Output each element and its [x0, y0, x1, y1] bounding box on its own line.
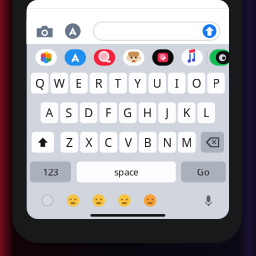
staticText: N — [163, 134, 172, 150]
button[interactable]: Memoji — [123, 49, 144, 66]
button[interactable]: Q — [31, 73, 48, 93]
button[interactable]: Shift — [32, 132, 54, 153]
button[interactable]: A — [41, 102, 58, 123]
button[interactable]: Recent emoji — [41, 194, 53, 207]
button[interactable]: Photos — [35, 49, 57, 66]
staticText: × — [211, 135, 217, 149]
staticText: E — [75, 75, 82, 91]
button[interactable]: Delete — [201, 132, 224, 153]
button[interactable]: Camera — [37, 25, 53, 37]
staticText: W — [54, 75, 65, 91]
staticText: O — [192, 75, 201, 91]
staticText: J — [165, 105, 168, 121]
button[interactable]: N — [158, 132, 176, 153]
staticText: B — [144, 134, 152, 150]
button[interactable]: E — [70, 73, 88, 93]
staticText: I — [175, 75, 179, 91]
button[interactable]: Emoji — [118, 194, 131, 207]
staticText: S — [66, 105, 73, 121]
button[interactable]: B — [139, 132, 156, 153]
button[interactable]: D — [80, 102, 97, 123]
button[interactable]: Send — [203, 24, 216, 38]
staticText: T — [115, 75, 122, 91]
staticText: D — [84, 105, 93, 121]
button[interactable]: 123 — [30, 161, 71, 182]
button[interactable]: S — [60, 102, 78, 123]
staticText: Go — [197, 166, 210, 178]
staticText: A — [45, 105, 53, 121]
button[interactable]: Emoji — [92, 194, 105, 207]
button[interactable]: Apps — [65, 23, 81, 39]
staticText: K — [183, 105, 190, 121]
staticText: V — [125, 134, 132, 150]
button[interactable]: W — [50, 73, 68, 93]
staticText: Y — [134, 75, 141, 91]
staticText: Q — [35, 75, 44, 91]
staticText: H — [143, 105, 152, 121]
staticText: L — [203, 105, 209, 121]
staticText: C — [105, 134, 113, 150]
staticText: P — [212, 75, 219, 91]
button[interactable]: Go — [181, 161, 226, 182]
staticText: space — [114, 166, 138, 178]
button[interactable]: J — [158, 102, 176, 123]
button[interactable]: O — [188, 73, 205, 93]
button[interactable]: P — [207, 73, 225, 93]
button[interactable]: F — [99, 102, 117, 123]
button[interactable]: I — [168, 73, 186, 93]
button[interactable]: C — [100, 132, 117, 153]
button[interactable]: Emoji — [144, 194, 156, 207]
button[interactable]: FaceTime — [210, 49, 231, 66]
staticText: R — [95, 75, 102, 91]
button[interactable]: App Store — [65, 49, 86, 66]
staticText: X — [85, 134, 92, 150]
button[interactable]: L — [197, 102, 215, 123]
button[interactable]: Music — [181, 49, 203, 66]
button[interactable]: K — [178, 102, 195, 123]
button[interactable]: R — [90, 73, 107, 93]
button[interactable]: space — [77, 161, 176, 182]
staticText: M — [181, 134, 192, 150]
staticText: F — [105, 105, 111, 121]
button[interactable]: U — [148, 73, 166, 93]
button[interactable]: G — [119, 102, 137, 123]
button[interactable]: X — [80, 132, 98, 153]
button[interactable]: Z — [61, 132, 78, 153]
button[interactable]: H — [139, 102, 156, 123]
button[interactable]: Emoji — [67, 194, 79, 207]
button[interactable]: Digital Touch — [152, 49, 174, 66]
button[interactable]: T — [109, 73, 127, 93]
staticText: 123 — [43, 166, 58, 178]
staticText: U — [153, 75, 162, 91]
button[interactable]: Y — [129, 73, 146, 93]
button[interactable]: V — [119, 132, 137, 153]
button[interactable]: Search images — [94, 49, 115, 66]
staticText: Z — [66, 134, 73, 150]
button[interactable]: Dictate — [203, 194, 214, 206]
staticText: G — [123, 105, 132, 121]
button[interactable]: M — [178, 132, 196, 153]
